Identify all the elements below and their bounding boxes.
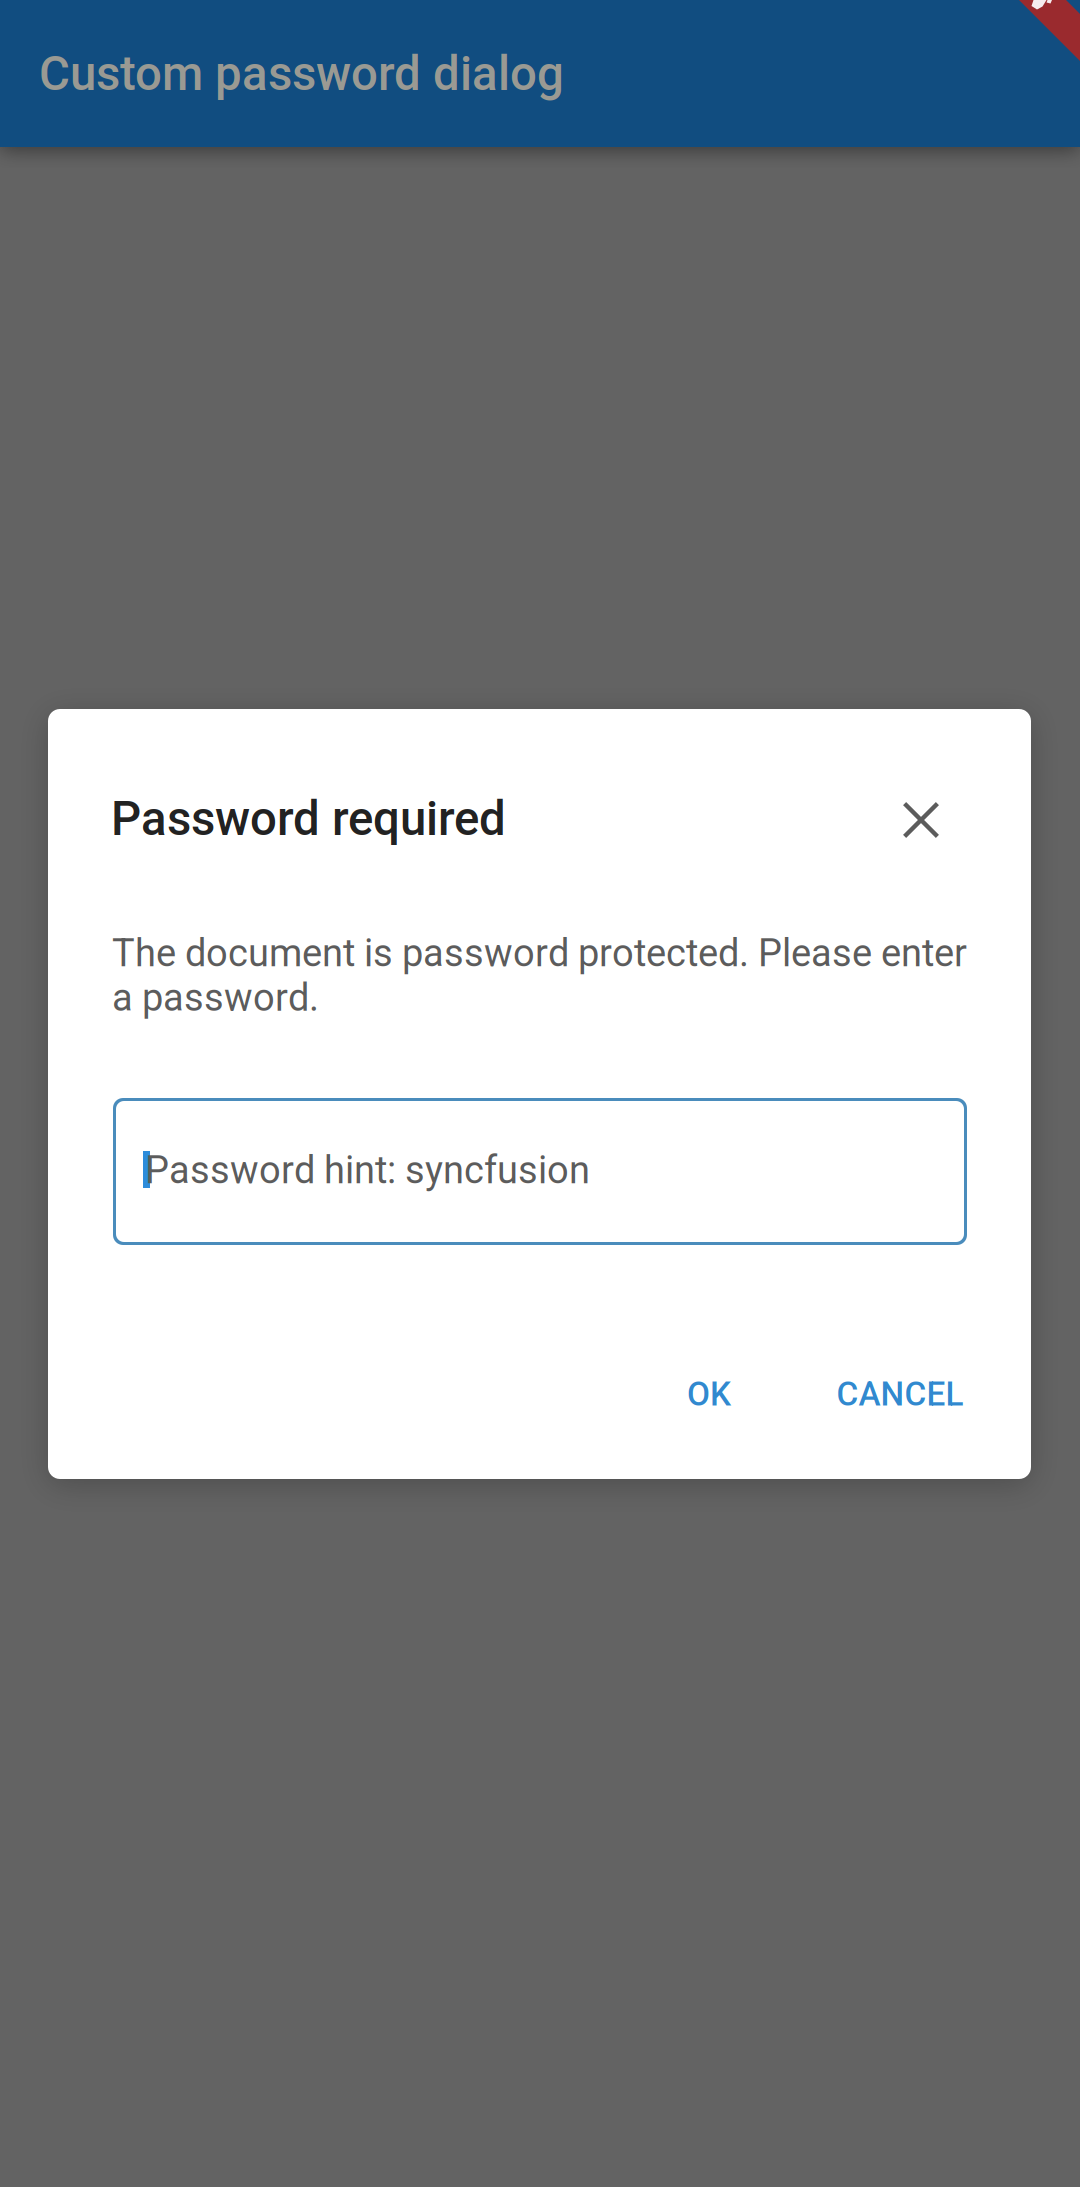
staticText: Custom password dialog [39,46,564,101]
staticText: Password required [111,791,506,846]
button[interactable]: CANCEL [805,1350,995,1438]
staticText: OK [687,1374,731,1414]
button[interactable]: Close [879,778,963,862]
staticText: The document is password protected. Plea… [112,931,967,1020]
staticText: Password hint: syncfusion [145,1148,590,1192]
staticText: CANCEL [836,1374,963,1414]
button[interactable]: OK [644,1350,774,1438]
